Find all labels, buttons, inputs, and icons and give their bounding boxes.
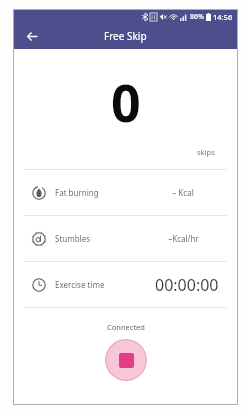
staticText: 86% (190, 12, 204, 22)
staticText: Stumbles (55, 233, 91, 244)
staticText: Fat burning (55, 187, 99, 198)
staticText: 00:00:00 (155, 274, 219, 296)
button[interactable]: Back (22, 26, 42, 46)
staticText: – Kcal (172, 187, 194, 198)
staticText: 0 (111, 66, 141, 137)
button[interactable]: Exercise time (14, 262, 237, 307)
staticText: Free Skip (104, 29, 147, 43)
button[interactable]: Stumbles (14, 216, 237, 261)
staticText: skips (197, 147, 215, 157)
button[interactable]: Stop (105, 339, 147, 381)
button[interactable]: Fat burning (14, 170, 237, 215)
staticText: Exercise time (55, 279, 105, 290)
staticText: –Kcal/hr (168, 233, 199, 244)
staticText: Connected (107, 322, 145, 332)
staticText: 14:56 (213, 12, 233, 22)
